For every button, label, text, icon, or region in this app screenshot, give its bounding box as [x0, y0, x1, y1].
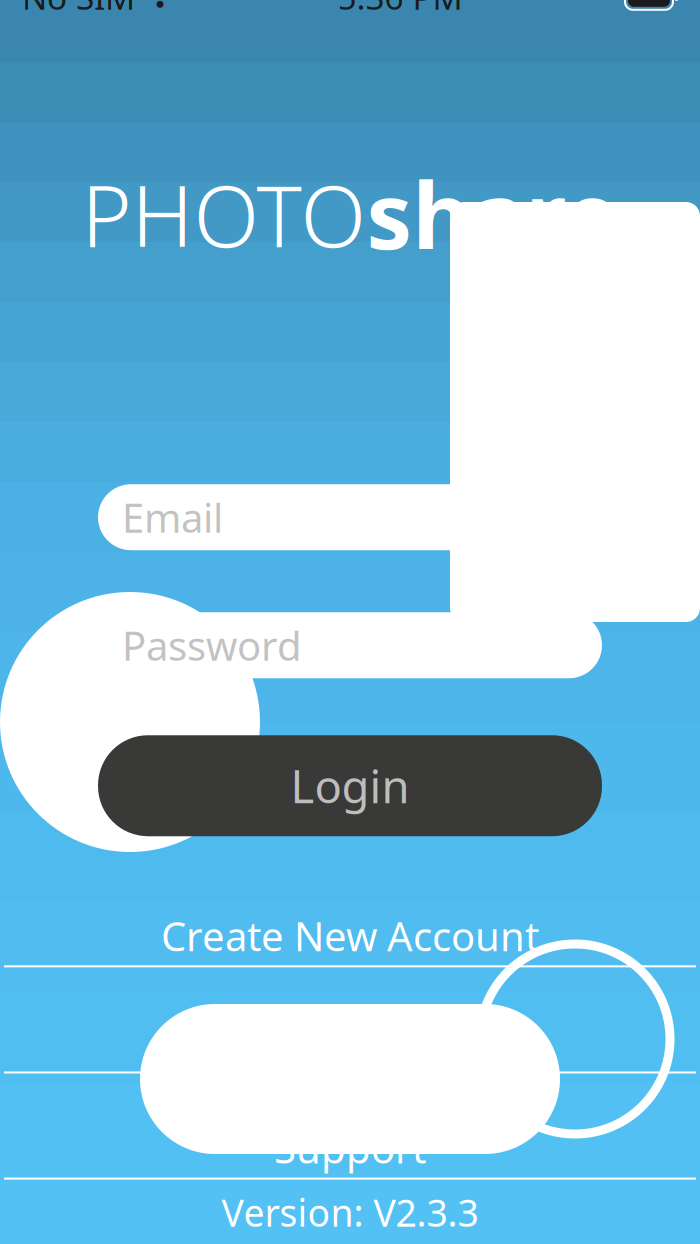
- staticText: No SIM: [22, 0, 135, 19]
- staticText: Support: [274, 1121, 426, 1175]
- button[interactable]: Support: [0, 1121, 700, 1180]
- button[interactable]: Create New Account: [0, 909, 700, 967]
- button[interactable]: Reset Password: [0, 1015, 700, 1073]
- button[interactable]: Login: [98, 735, 602, 836]
- staticText: share: [366, 154, 618, 274]
- staticText: 5:36 PM: [337, 0, 462, 19]
- staticText: Email: [122, 491, 223, 544]
- staticText: Password: [122, 619, 302, 672]
- staticText: Version: V2.3.3: [221, 1188, 478, 1237]
- staticText: Login: [290, 756, 409, 816]
- staticText: PHOTO: [81, 157, 366, 271]
- staticText: Create New Account: [161, 909, 539, 962]
